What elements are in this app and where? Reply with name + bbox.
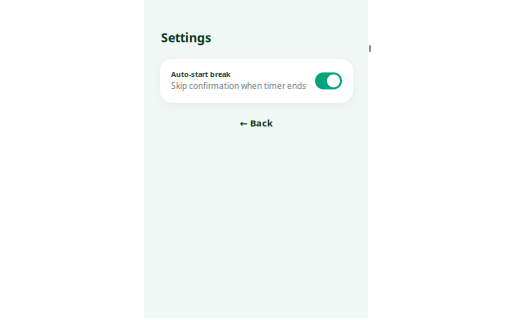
button[interactable]: Auto-start break <box>160 59 353 103</box>
button[interactable]: ← Back <box>160 114 353 132</box>
staticText: Settings <box>161 29 211 46</box>
staticText: Skip confirmation when timer ends <box>171 80 306 92</box>
staticText: ← Back <box>240 116 273 129</box>
staticText: Auto-start break <box>171 69 231 79</box>
